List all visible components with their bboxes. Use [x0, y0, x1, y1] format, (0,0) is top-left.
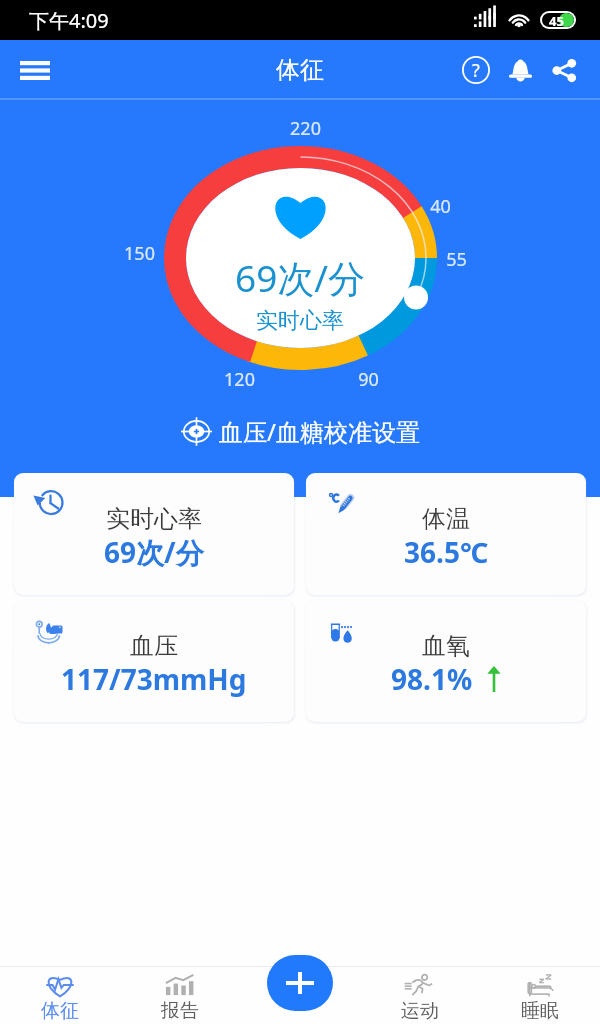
button[interactable]: Help — [454, 48, 498, 92]
staticText: 运动 — [401, 999, 439, 1023]
staticText: 血压 — [130, 631, 178, 661]
button[interactable]: 实时心率 — [14, 473, 294, 595]
staticText: 报告 — [161, 999, 199, 1023]
button[interactable]: 血压 — [14, 600, 294, 722]
staticText: 体温 — [422, 504, 470, 534]
button[interactable]: 报告 — [120, 966, 240, 1024]
button[interactable]: Share — [542, 48, 586, 92]
staticText: 36.5℃ — [404, 533, 489, 571]
button[interactable]: 睡眠 — [480, 966, 600, 1024]
staticText: 睡眠 — [521, 999, 559, 1023]
button[interactable]: 血压/血糖校准设置 — [181, 415, 420, 448]
button[interactable]: Menu — [13, 48, 57, 92]
button[interactable]: 体温 — [306, 473, 586, 595]
staticText: 实时心率 — [106, 504, 202, 534]
button[interactable]: Add — [267, 955, 333, 1011]
staticText: 120 — [224, 367, 255, 392]
staticText: 血氧 — [422, 631, 470, 661]
button[interactable]: 运动 — [360, 966, 480, 1024]
staticText: 下午4:09 — [29, 7, 109, 34]
staticText: 90 — [358, 367, 379, 392]
staticText: 55 — [446, 247, 467, 272]
staticText: 体征 — [41, 999, 79, 1023]
staticText: 69次/分 — [235, 252, 366, 303]
button[interactable]: 血氧 — [306, 600, 586, 722]
button[interactable]: Notifications — [498, 48, 542, 92]
staticText: 69次/分 — [104, 533, 204, 571]
staticText: ? — [472, 58, 480, 83]
staticText: 117/73mmHg — [61, 660, 247, 698]
staticText: 150 — [124, 241, 155, 266]
staticText: 体征 — [276, 55, 324, 85]
button[interactable]: 体征 — [0, 966, 120, 1024]
staticText: 40 — [430, 194, 451, 219]
staticText: 220 — [290, 116, 321, 141]
staticText: 血压/血糖校准设置 — [219, 415, 420, 448]
staticText: 实时心率 — [256, 307, 344, 335]
staticText: 98.1% — [391, 660, 473, 698]
staticText: 45 — [549, 13, 564, 26]
